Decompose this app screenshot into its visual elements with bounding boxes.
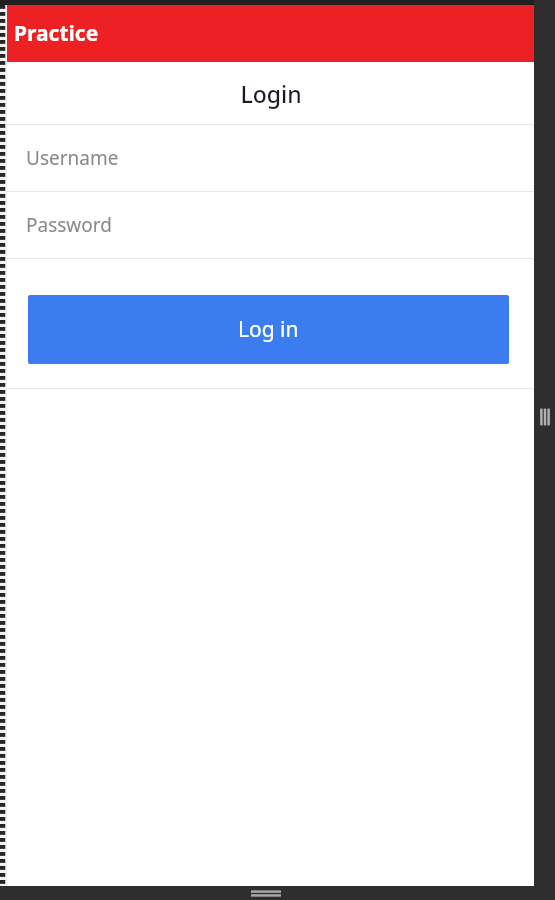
staticText: Password — [26, 212, 112, 238]
button[interactable]: Username — [7, 125, 534, 191]
button[interactable]: Resize panel — [251, 889, 281, 898]
staticText: Log in — [238, 315, 299, 344]
staticText: Username — [26, 145, 119, 171]
staticText: Login — [240, 78, 302, 109]
button[interactable]: Password — [7, 192, 534, 258]
button[interactable]: Log in — [28, 295, 509, 364]
button[interactable]: Resize panel — [539, 405, 551, 429]
staticText: Practice — [14, 19, 99, 48]
